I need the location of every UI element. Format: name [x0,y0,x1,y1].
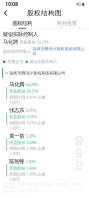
button[interactable]: 马化腾 [6,81,87,105]
staticText: 受益股份 1.83% [9,165,36,171]
staticText: 1.83% [26,159,36,164]
staticText: 受益股份 3.51% [9,114,36,119]
staticText: 免责声明：本页面数据来源于公开渠道，仅供参考，不构成任何投资建议。 [3,182,84,189]
staticText: 疑似实际控制人 [3,31,38,38]
staticText: 对外投资 [57,20,77,26]
staticText: 受益股份 2.28% [9,140,36,145]
staticText: 全屏 [76,142,82,145]
staticText: 持股比例 3.51% 认缴 1.00万 [9,120,45,131]
staticText: 疑似实际控制人 [3,49,31,54]
staticText: 2.28% [26,133,36,138]
button[interactable]: 黄一苗 [6,133,87,156]
button[interactable]: 全屏 [74,137,84,145]
staticText: 持股比例 2.28% 认缴 1.00万 [9,146,45,156]
staticText: 马化腾 [3,39,18,45]
staticText: 黄一苗 [9,133,24,139]
staticText: ▮ [81,2,84,6]
staticText: 持股比例 1.83% 认缴 1.00万 [9,171,45,182]
staticText: 深圳市腾讯计算机系统有限公司 [32,46,84,56]
staticText: 数据更新于 2023-08-12 [3,189,37,193]
staticText: 控股企业 [7,59,23,64]
staticText: › [37,133,38,138]
button[interactable]: 张志东 [6,107,87,131]
staticText: 受益股份 54.29% [19,39,48,45]
button[interactable]: 导出 [74,162,84,170]
staticText: 分享 [76,155,82,158]
button[interactable]: 分享 [74,149,84,158]
staticText: 疑似实际控制人 [30,59,58,64]
staticText: 股权结构图 [27,9,62,17]
button[interactable]: 深圳市腾讯计算机系统有限公司 [2,67,87,79]
staticText: 陈智锋 [9,158,24,165]
staticText: 深圳市腾讯计算机系统有限公司 [9,71,65,76]
staticText: 10:08 [5,0,18,8]
staticText: 受益股份 54.29% [9,88,38,94]
staticText: 导出 [76,167,82,170]
button[interactable]: 陈智锋 [6,158,87,182]
staticText: › [37,107,38,113]
staticText: 张志东 [9,107,24,113]
staticText: 54.29% [26,82,38,87]
staticText: 持股比例 8.42% 认缴 1.00万 [9,94,45,105]
button[interactable]: Back [0,8,13,18]
button[interactable]: 对外投资 [44,18,89,29]
button[interactable]: 股权结构 [0,18,44,29]
staticText: › [37,159,38,164]
staticText: 股权结构 [12,20,32,26]
staticText: 4G [76,1,81,7]
staticText: 马化腾 [9,81,24,88]
staticText: › [39,82,40,87]
staticText: 3.51% [26,107,36,113]
